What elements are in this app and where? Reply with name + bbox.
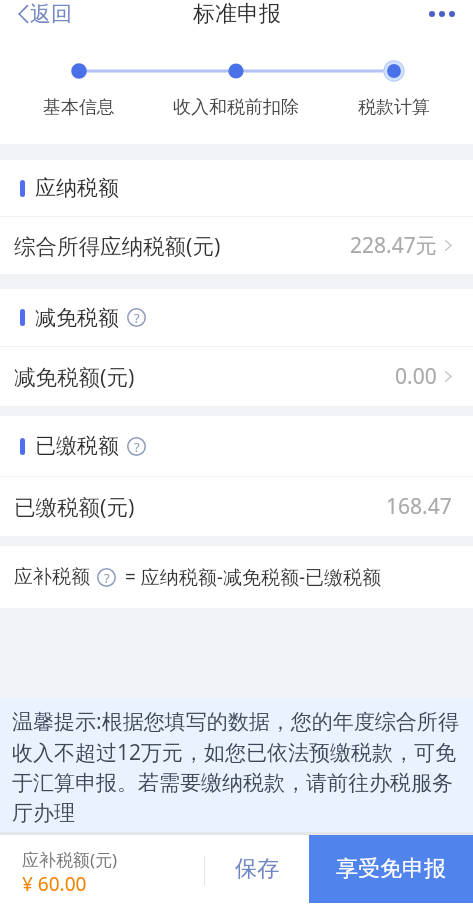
staticText: 0.00 [395,362,437,391]
staticText: ? [134,309,140,327]
button[interactable]: Help [97,568,116,587]
staticText: 已缴税额 [35,433,119,459]
staticText: = 应纳税额-减免税额-已缴税额 [125,564,382,590]
staticText: ¥ 60.00 [22,871,87,897]
staticText: 收入和税前扣除 [173,96,299,119]
staticText: 应补税额(元) [22,848,118,871]
staticText: 减免税额 [35,305,119,331]
staticText: 返回 [30,1,72,27]
button[interactable]: 返回 [18,0,72,27]
staticText: 已缴税额(元) [14,492,135,521]
staticText: 综合所得应纳税额(元) [14,231,221,260]
staticText: 基本信息 [43,96,115,119]
button[interactable]: Help [127,437,146,456]
staticText: 标准申报 [193,0,281,25]
button[interactable]: 保存 [209,835,305,903]
staticText: 税款计算 [358,96,430,119]
button[interactable]: 已缴税额(元) [0,477,473,536]
staticText: 保存 [235,855,279,883]
staticText: ? [134,438,140,456]
button[interactable]: 综合所得应纳税额(元) [0,217,473,274]
staticText: 应补税额 [14,565,90,589]
staticText: 228.47元 [350,231,437,260]
staticText: ? [104,569,110,587]
button[interactable]: Help [127,308,146,327]
button[interactable]: More options [0,11,455,17]
staticText: 应纳税额 [35,175,119,201]
button[interactable]: 减免税额(元) [0,347,473,406]
button[interactable]: 享受免申报 [309,835,473,903]
staticText: 温馨提示:根据您填写的数据，您的年度综合所得收入不超过12万元，如您已依法预缴税… [12,707,459,826]
staticText: 减免税额(元) [14,362,135,391]
staticText: 168.47 [386,492,452,521]
staticText: 享受免申报 [336,855,446,883]
